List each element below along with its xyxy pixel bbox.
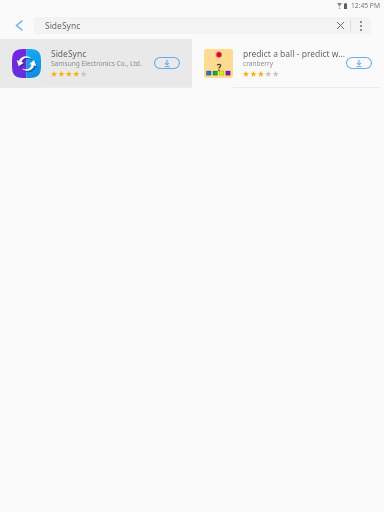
staticText: cranberry [243,59,347,68]
button[interactable]: Back [8,13,30,37]
staticText: SideSync [51,48,155,60]
button[interactable]: Clear search [332,17,349,34]
staticText: Samsung Electronics Co., Ltd. [51,59,155,68]
button[interactable]: SideSync [34,17,371,34]
button[interactable]: More options [352,17,369,34]
staticText: SideSync [45,20,81,32]
button[interactable]: Install [154,57,180,69]
staticText: 12:45 PM [351,1,380,10]
staticText: predict a ball - predict w... [243,48,347,60]
button[interactable]: Install [346,57,372,69]
button[interactable]: predict a ball - predict w... [192,39,384,88]
button[interactable]: SideSync [0,39,192,88]
